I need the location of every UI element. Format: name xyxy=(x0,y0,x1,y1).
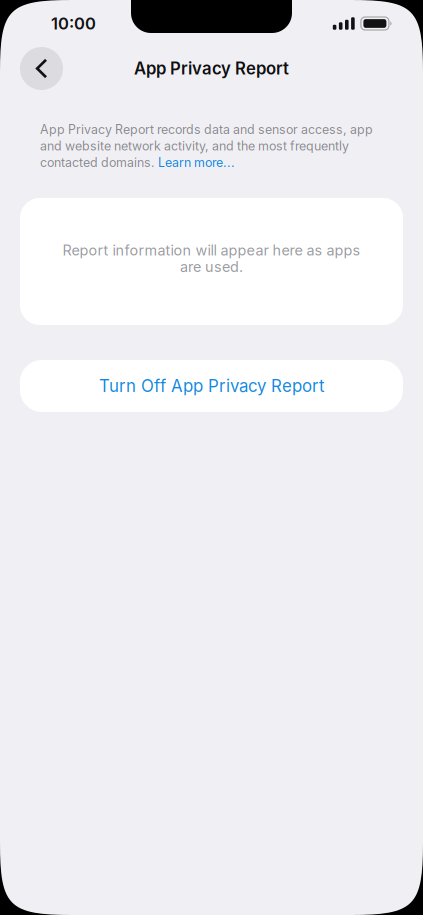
staticText: 10:00 xyxy=(51,13,96,33)
button[interactable]: Turn Off App Privacy Report xyxy=(0,360,423,412)
staticText: contacted domains. xyxy=(40,155,158,170)
staticText: are used. xyxy=(180,258,243,275)
staticText: App Privacy Report records data and sens… xyxy=(40,122,373,137)
staticText: Report information will appear here as a… xyxy=(62,242,360,259)
staticText: Turn Off App Privacy Report xyxy=(99,376,324,396)
staticText: and website network activity, and the mo… xyxy=(40,138,349,153)
staticText: Learn more... xyxy=(158,155,235,170)
staticText: App Privacy Report xyxy=(134,58,289,79)
button[interactable]: Back xyxy=(20,47,63,90)
button[interactable]: Learn more... xyxy=(158,155,235,170)
